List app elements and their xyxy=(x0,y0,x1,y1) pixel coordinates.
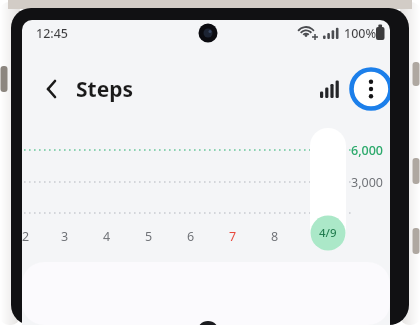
button[interactable]: More options xyxy=(350,68,390,112)
button[interactable]: Back xyxy=(30,70,70,110)
button[interactable]: Steps xyxy=(68,72,158,106)
button[interactable]: Chart view xyxy=(310,70,350,110)
button[interactable]: April 9 steps xyxy=(308,126,348,254)
